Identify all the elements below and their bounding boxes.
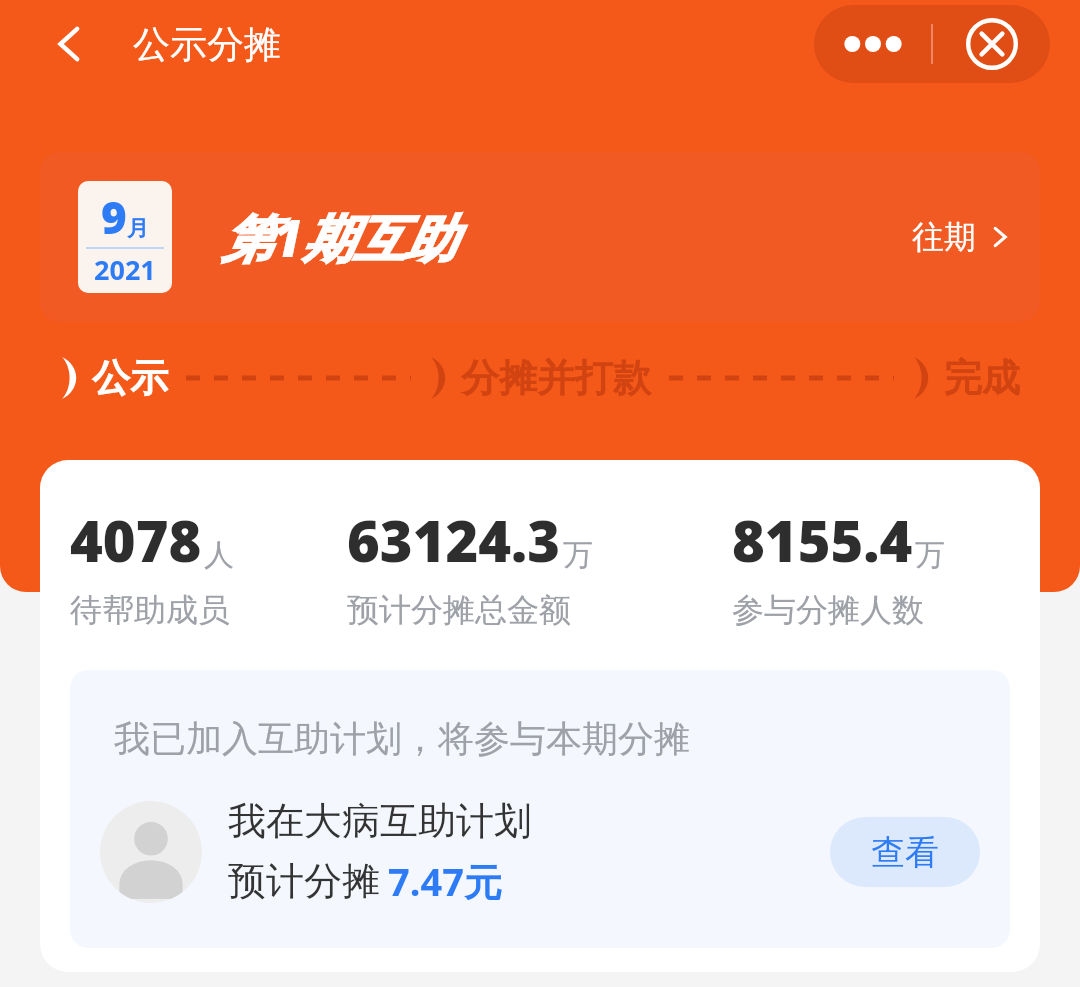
staticText: 公示分摊: [133, 21, 281, 68]
staticText: 参与分摊人数: [732, 590, 924, 630]
staticText: 人: [204, 536, 234, 574]
staticText: 第1期互助: [222, 202, 456, 272]
staticText: 63124.3: [347, 502, 561, 578]
button[interactable]: Close: [933, 5, 1050, 83]
staticText: 查看: [871, 831, 939, 874]
staticText: 7.47元: [388, 855, 502, 907]
button[interactable]: 查看: [830, 817, 980, 887]
staticText: 4078: [70, 502, 202, 578]
staticText: 我已加入互助计划，将参与本期分摊: [114, 716, 690, 761]
staticText: 万: [915, 536, 945, 574]
staticText: 万: [563, 536, 593, 574]
button[interactable]: More options: [814, 5, 931, 83]
staticText: 待帮助成员: [70, 590, 230, 630]
staticText: 分摊并打款: [461, 354, 651, 402]
button[interactable]: 往期: [912, 217, 1012, 257]
staticText: 月: [127, 215, 149, 243]
staticText: 我在大病互助计划: [228, 797, 532, 845]
staticText: 9: [101, 187, 127, 247]
button[interactable]: 9: [40, 152, 1040, 322]
staticText: 2021: [94, 251, 156, 288]
button[interactable]: Back: [34, 8, 106, 80]
staticText: 预计分摊: [228, 857, 380, 905]
staticText: 8155.4: [732, 502, 913, 578]
staticText: 公示: [92, 354, 168, 402]
staticText: 完成: [944, 354, 1020, 402]
staticText: 预计分摊总金额: [347, 590, 571, 630]
staticText: 往期: [912, 217, 976, 257]
